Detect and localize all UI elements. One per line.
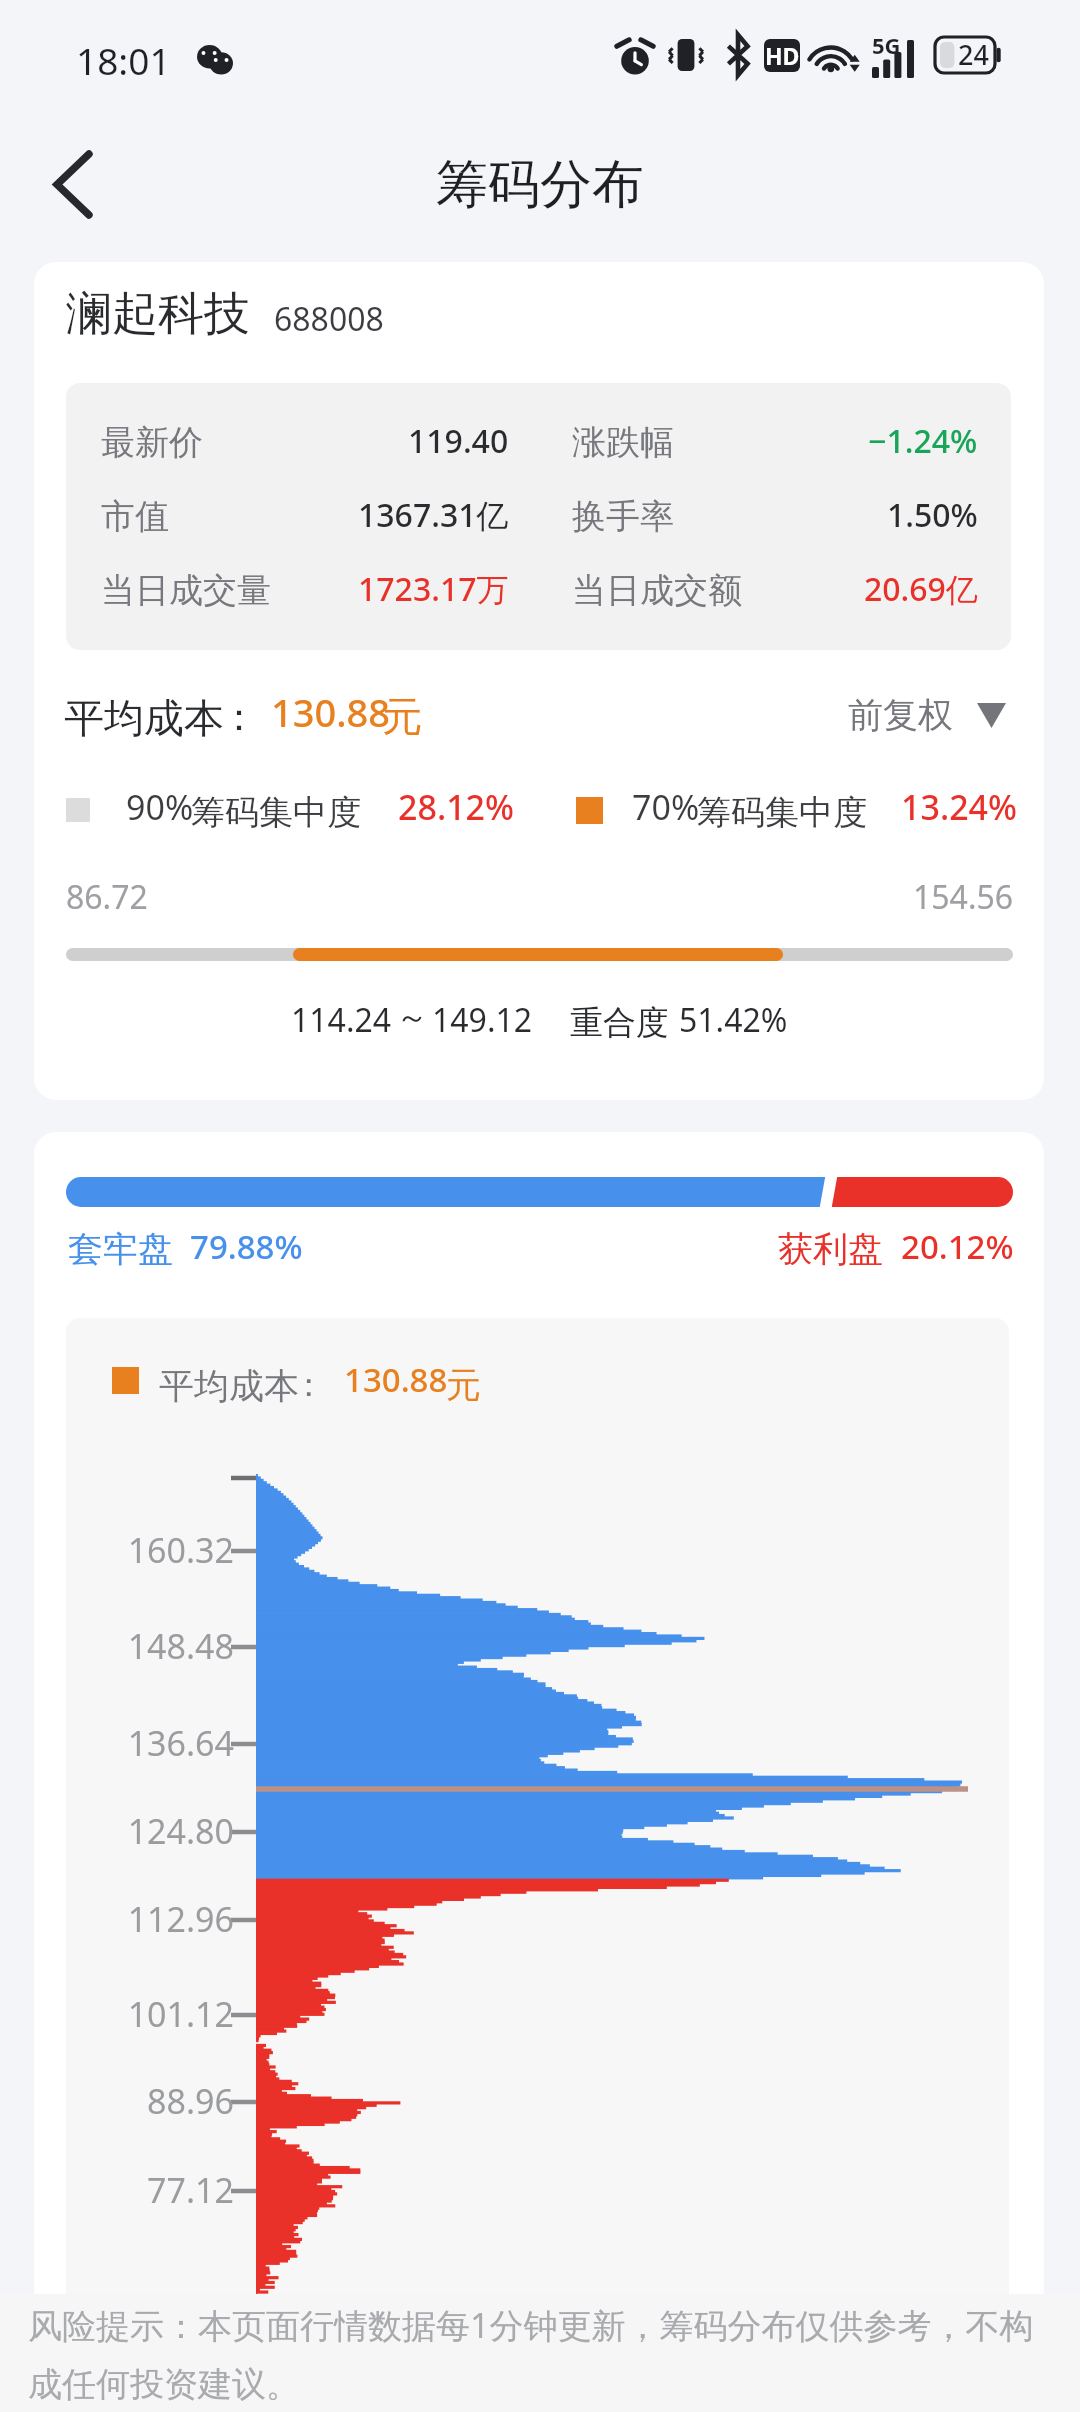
staticText: 688008: [274, 297, 384, 341]
staticText: ：: [292, 1364, 325, 1406]
staticText: −1.24%: [868, 419, 978, 463]
staticText: 筹码分布: [436, 152, 644, 218]
staticText: 77.12: [66, 2167, 234, 2213]
staticText: 154.56: [913, 875, 1014, 919]
staticText: 平均成本: [64, 693, 224, 743]
staticText: 最新价: [101, 421, 203, 464]
staticText: 119.40: [408, 419, 509, 463]
staticText: 前复权: [848, 693, 953, 737]
staticText: 5G: [872, 30, 901, 60]
staticText: 114.24: [291, 998, 392, 1042]
staticText: 149.12: [432, 998, 533, 1042]
staticText: 112.96: [66, 1896, 234, 1942]
staticText: 元: [382, 691, 422, 741]
staticText: 当日成交量: [101, 569, 271, 612]
staticText: 1.50%: [887, 493, 978, 537]
staticText: 获利盘: [778, 1227, 883, 1271]
staticText: 160.32: [66, 1527, 234, 1573]
staticText: 13.24%: [901, 784, 1018, 830]
staticText: 124.80: [66, 1808, 234, 1854]
button[interactable]: 澜起科技: [54, 272, 454, 372]
staticText: ：: [220, 693, 258, 741]
staticText: 28.12%: [398, 784, 515, 830]
staticText: 市值: [101, 495, 169, 538]
staticText: 20.69亿: [864, 567, 978, 611]
staticText: 涨跌幅: [572, 421, 674, 464]
staticText: 1367.31亿: [358, 493, 509, 537]
staticText: 换手率: [572, 495, 674, 538]
staticText: 20.12%: [901, 1224, 1014, 1269]
button[interactable]: Back: [18, 129, 128, 239]
staticText: HD: [765, 40, 800, 71]
staticText: 101.12: [66, 1991, 234, 2037]
staticText: 当日成交额: [572, 569, 742, 612]
staticText: 1723.17万: [358, 567, 509, 611]
staticText: 148.48: [66, 1623, 234, 1669]
staticText: 88.96: [66, 2078, 234, 2124]
staticText: 澜起科技: [66, 285, 250, 343]
staticText: 51.42%: [679, 998, 788, 1042]
staticText: 重合度: [570, 1002, 669, 1044]
staticText: 套牢盘: [68, 1227, 173, 1271]
staticText: 筹码集中度: [191, 791, 361, 834]
staticText: 130.88: [344, 1357, 448, 1402]
staticText: 70%: [632, 784, 700, 830]
staticText: 90%: [126, 784, 194, 830]
staticText: 平均成本: [159, 1364, 299, 1408]
staticText: 元: [446, 1363, 481, 1407]
staticText: 136.64: [66, 1720, 234, 1766]
staticText: 79.88%: [190, 1224, 303, 1269]
staticText: 24: [958, 36, 989, 72]
staticText: 18:01: [76, 35, 171, 85]
staticText: 130.88: [271, 686, 391, 738]
staticText: 86.72: [66, 875, 148, 919]
staticText: 风险提示：本页面行情数据每1分钟更新，筹码分布仅供参考，不构成任何投资建议。: [28, 2302, 1056, 2406]
staticText: 筹码集中度: [697, 791, 867, 834]
button[interactable]: 切换复权方式: [834, 685, 1014, 745]
staticText: ～: [396, 997, 428, 1037]
